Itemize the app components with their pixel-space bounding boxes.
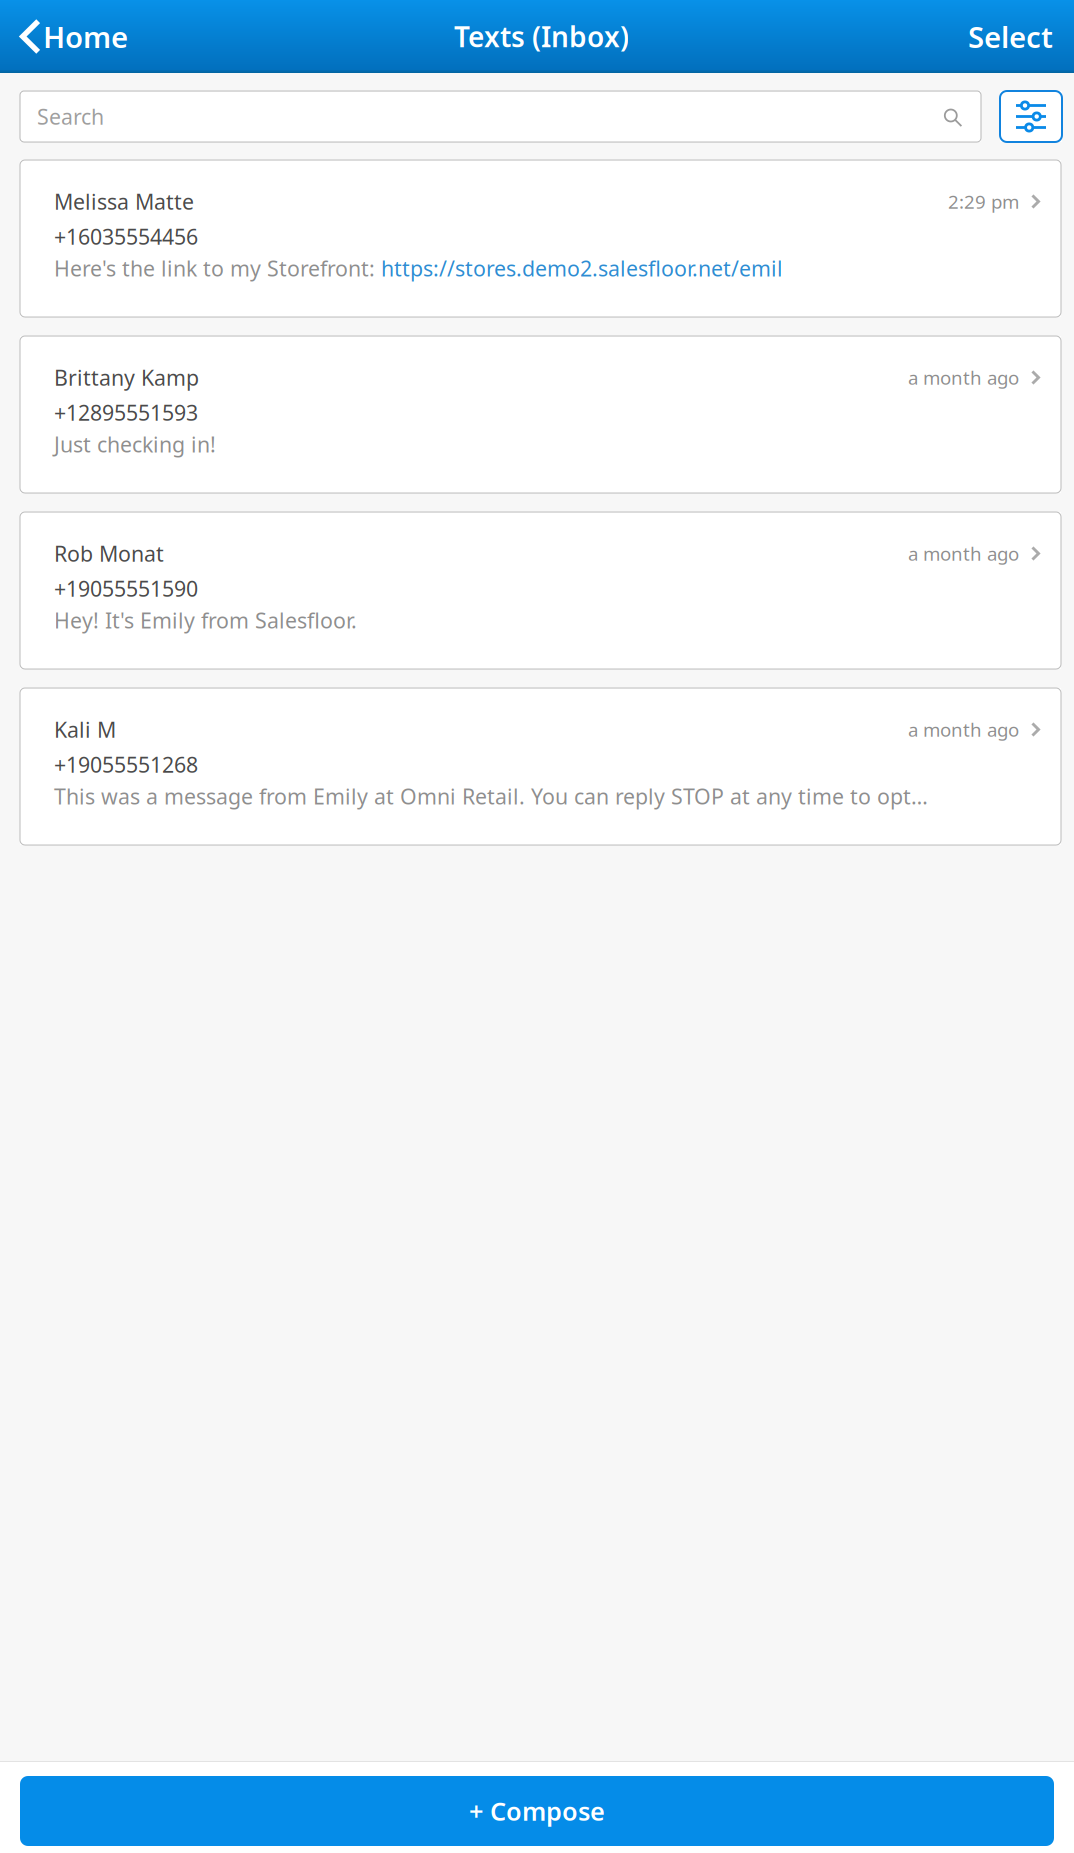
staticText: +19055551590 xyxy=(54,574,198,603)
staticText: Brittany Kamp xyxy=(54,363,199,392)
staticText: +12895551593 xyxy=(54,398,198,427)
staticText: a month ago xyxy=(908,717,1019,742)
staticText: Home xyxy=(43,17,128,56)
staticText: Kali M xyxy=(54,715,116,744)
button[interactable]: Brittany Kamp xyxy=(20,336,1061,493)
staticText: a month ago xyxy=(908,365,1019,390)
staticText: This was a message from Emily at Omni Re… xyxy=(54,782,928,810)
button[interactable]: Home xyxy=(0,11,142,62)
staticText: Select xyxy=(968,17,1053,56)
staticText: + Compose xyxy=(469,1794,605,1828)
staticText: Texts (Inbox) xyxy=(454,18,629,55)
staticText: Hey! It's Emily from Salesfloor. xyxy=(54,606,357,634)
staticText: Rob Monat xyxy=(54,539,164,568)
button[interactable]: Select xyxy=(946,11,1074,62)
button[interactable]: Filter xyxy=(1000,91,1062,142)
button[interactable]: Rob Monat xyxy=(20,512,1061,669)
button[interactable]: + Compose xyxy=(20,1776,1054,1846)
staticText: a month ago xyxy=(908,541,1019,566)
staticText: +16035554456 xyxy=(54,222,198,251)
staticText: 2:29 pm xyxy=(948,189,1019,214)
button[interactable]: Kali M xyxy=(20,688,1061,845)
staticText: +19055551268 xyxy=(54,750,198,779)
button[interactable]: Melissa Matte xyxy=(20,160,1061,317)
staticText: Just checking in! xyxy=(54,430,216,458)
staticText: Here's the link to my Storefront: https:… xyxy=(54,254,783,282)
staticText: Melissa Matte xyxy=(54,187,194,216)
staticText: Search xyxy=(37,102,104,131)
